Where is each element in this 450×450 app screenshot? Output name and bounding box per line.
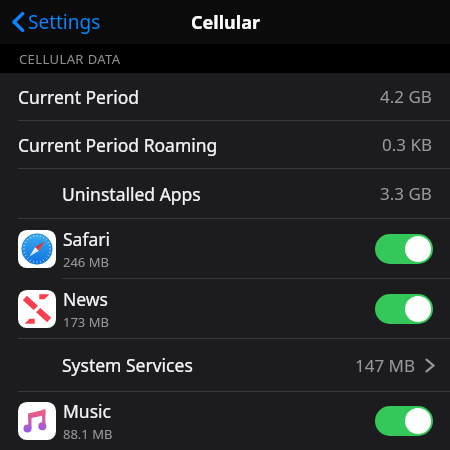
staticText: Uninstalled Apps xyxy=(62,182,201,206)
staticText: Cellular xyxy=(191,10,260,35)
staticText: Current Period xyxy=(18,85,140,109)
button[interactable]: Safari xyxy=(0,219,450,278)
staticText: System Services xyxy=(62,353,193,377)
staticText: 147 MB xyxy=(355,354,416,377)
staticText: 246 MB xyxy=(63,253,109,271)
staticText: 88.1 MB xyxy=(63,425,113,443)
staticText: 0.3 KB xyxy=(382,133,432,156)
staticText: Music xyxy=(63,399,111,423)
staticText: CELLULAR DATA xyxy=(19,50,121,68)
staticText: 3.3 GB xyxy=(380,182,432,205)
button[interactable]: Settings xyxy=(12,9,101,35)
staticText: 4.2 GB xyxy=(380,85,432,108)
staticText: Safari xyxy=(63,227,111,251)
button[interactable]: Uninstalled Apps xyxy=(0,169,450,218)
button[interactable]: Current Period xyxy=(0,73,450,120)
button[interactable]: Toggle cellular data xyxy=(375,406,433,436)
button[interactable]: News xyxy=(0,279,450,338)
button[interactable]: Toggle cellular data xyxy=(375,294,433,324)
button[interactable]: Toggle cellular data xyxy=(375,234,433,264)
staticText: Current Period Roaming xyxy=(18,133,218,157)
button[interactable]: Music xyxy=(0,392,450,450)
staticText: Settings xyxy=(28,9,101,35)
staticText: News xyxy=(63,287,108,311)
button[interactable]: Current Period Roaming xyxy=(0,121,450,168)
staticText: 173 MB xyxy=(63,313,109,331)
button[interactable]: System Services xyxy=(0,339,450,391)
